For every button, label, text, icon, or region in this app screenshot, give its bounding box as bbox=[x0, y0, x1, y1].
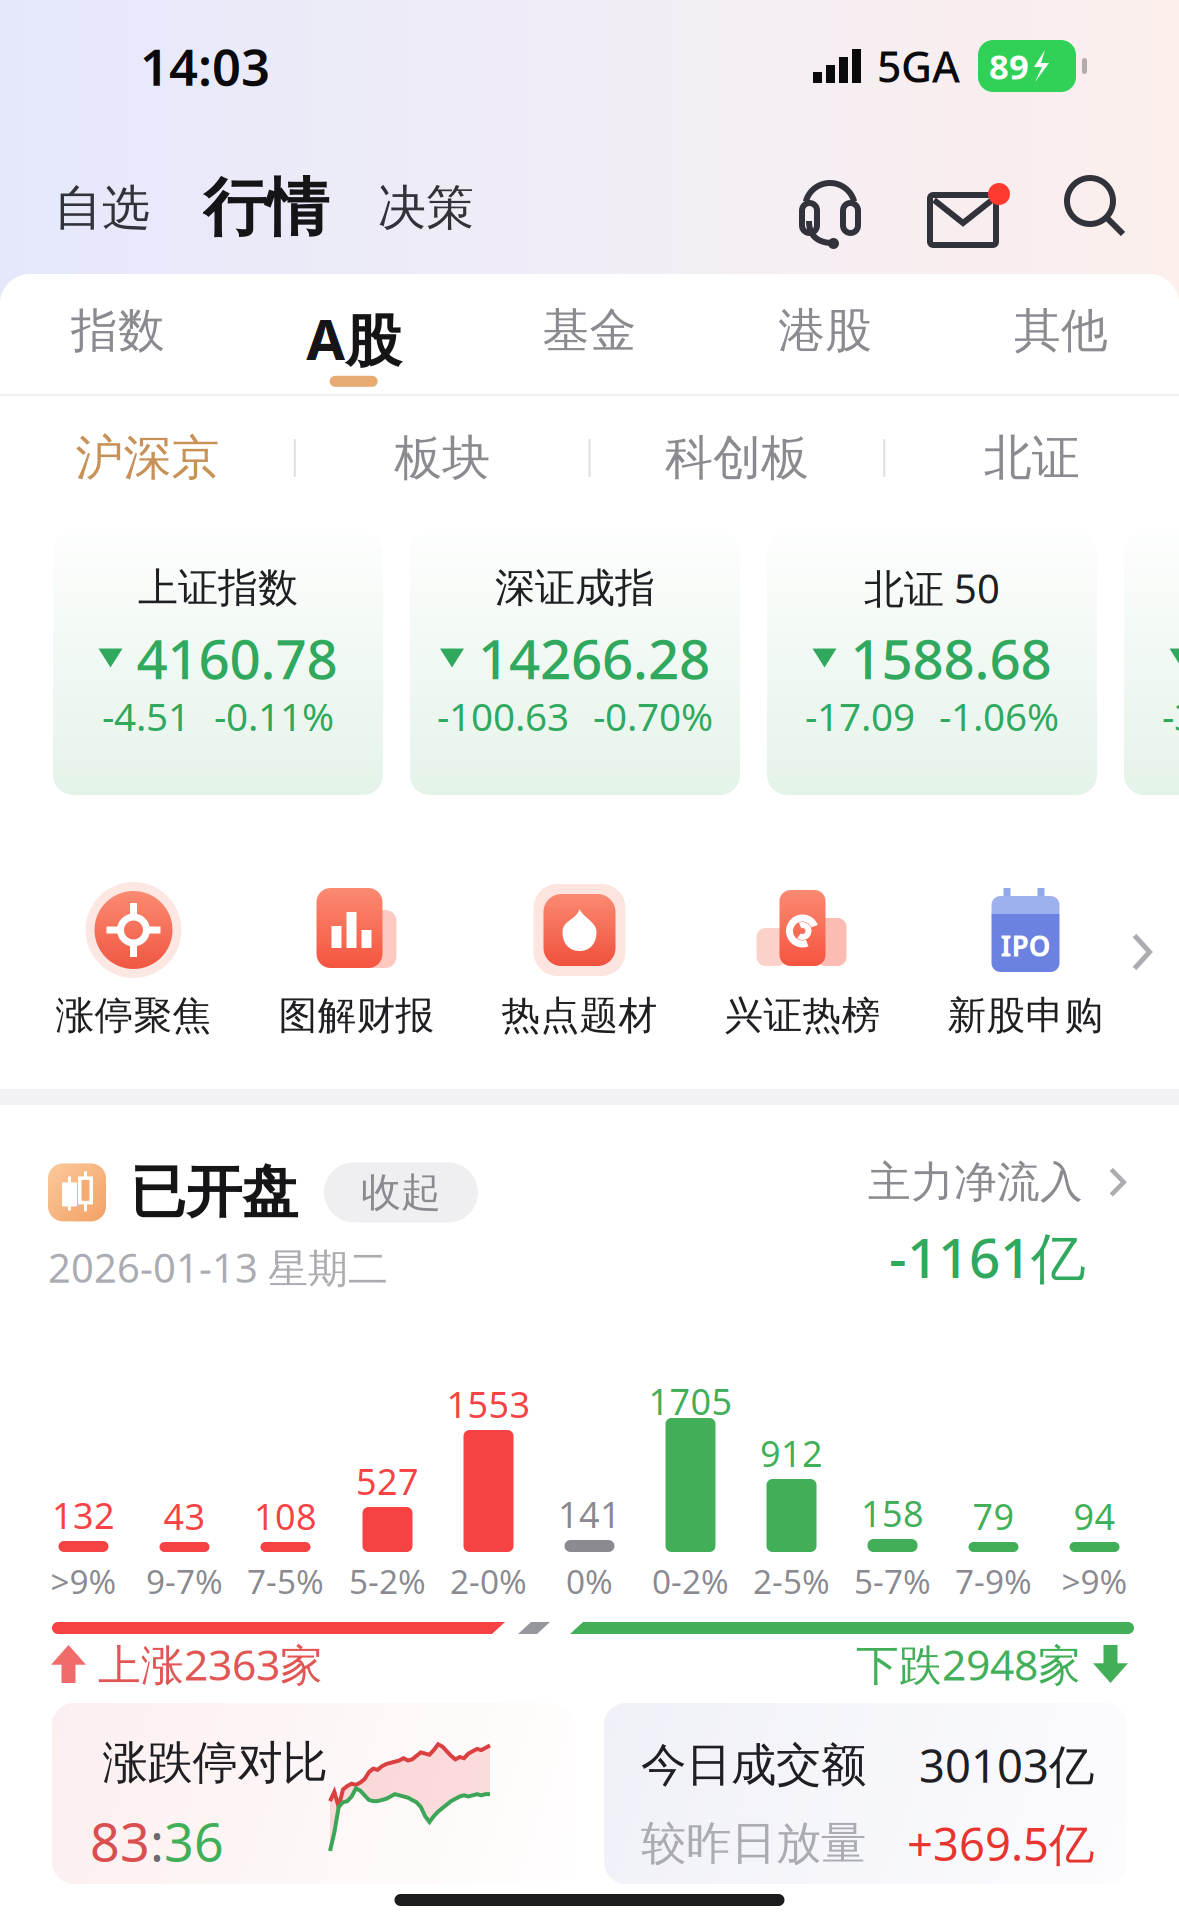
staticText: 热点题材 bbox=[501, 992, 657, 1039]
staticText: 0% bbox=[566, 1559, 613, 1603]
staticText: 已开盘 bbox=[130, 1158, 298, 1227]
staticText: +369.5亿 bbox=[907, 1813, 1094, 1873]
staticText: 94 bbox=[1073, 1492, 1115, 1540]
staticText: 沪深京 bbox=[75, 428, 219, 487]
staticText: -100.63 bbox=[437, 690, 569, 742]
button[interactable]: 北证 50 bbox=[767, 532, 1097, 795]
button[interactable]: Customer service bbox=[801, 172, 859, 244]
staticText: 1705 bbox=[648, 1377, 732, 1425]
staticText: 5GA bbox=[877, 38, 960, 94]
staticText: 指数 bbox=[71, 302, 165, 359]
staticText: 79 bbox=[972, 1492, 1014, 1540]
staticText: 912 bbox=[760, 1429, 823, 1477]
staticText: : bbox=[150, 1807, 164, 1876]
staticText: 527 bbox=[356, 1457, 419, 1505]
button[interactable]: 科创板 bbox=[590, 396, 883, 520]
staticText: 涨停聚焦 bbox=[55, 992, 211, 1039]
button[interactable]: 主力净流入 bbox=[798, 1156, 1138, 1293]
button[interactable]: 今日成交额 bbox=[604, 1703, 1127, 1884]
staticText: 兴证热榜 bbox=[724, 992, 880, 1039]
staticText: 北证 50 bbox=[864, 561, 1000, 614]
button[interactable]: 指数 bbox=[0, 290, 236, 394]
staticText: -0.70% bbox=[593, 690, 713, 742]
staticText: 14:03 bbox=[140, 32, 270, 100]
staticText: 1588.68 bbox=[850, 622, 1051, 694]
staticText: 0-2% bbox=[652, 1559, 729, 1603]
button[interactable]: A股 bbox=[236, 290, 472, 394]
staticText: 36 bbox=[164, 1807, 224, 1876]
staticText: 1553 bbox=[446, 1380, 530, 1428]
staticText: 7-5% bbox=[247, 1559, 324, 1603]
staticText: 108 bbox=[254, 1492, 317, 1540]
staticText: 港股 bbox=[778, 302, 872, 359]
staticText: 14266.28 bbox=[478, 622, 710, 694]
staticText: 上涨2363家 bbox=[98, 1636, 323, 1692]
staticText: 新股申购 bbox=[947, 992, 1103, 1039]
staticText: 较昨日放量 bbox=[641, 1815, 866, 1871]
button[interactable]: 行情 bbox=[196, 158, 336, 258]
staticText: 89 bbox=[989, 43, 1029, 89]
staticText: 基金 bbox=[542, 302, 636, 359]
staticText: 30103亿 bbox=[919, 1735, 1094, 1795]
button[interactable]: 自选 bbox=[52, 158, 152, 258]
button[interactable]: 热点题材 bbox=[468, 870, 691, 1070]
button[interactable]: 创业板指 bbox=[1124, 532, 1179, 795]
button[interactable]: 深证成指 bbox=[410, 532, 740, 795]
staticText: 5-2% bbox=[349, 1559, 426, 1603]
staticText: 涨跌停对比 bbox=[102, 1735, 327, 1791]
staticText: 2-5% bbox=[753, 1559, 830, 1603]
button[interactable]: 涨跌停对比 bbox=[52, 1703, 575, 1884]
staticText: 板块 bbox=[394, 428, 490, 487]
staticText: 132 bbox=[52, 1491, 115, 1539]
button[interactable]: 涨停聚焦 bbox=[22, 870, 245, 1070]
button[interactable]: 板块 bbox=[296, 396, 589, 520]
staticText: >9% bbox=[50, 1559, 116, 1603]
button[interactable]: 上证指数 bbox=[53, 532, 383, 795]
staticText: 5-7% bbox=[854, 1559, 931, 1603]
staticText: 83 bbox=[90, 1807, 150, 1876]
staticText: 2-0% bbox=[450, 1559, 527, 1603]
staticText: >9% bbox=[1061, 1559, 1127, 1603]
staticText: 43 bbox=[163, 1492, 205, 1540]
button[interactable]: IPO bbox=[914, 870, 1137, 1070]
staticText: -1161亿 bbox=[889, 1220, 1086, 1293]
staticText: 今日成交额 bbox=[641, 1737, 866, 1793]
staticText: 4160.78 bbox=[136, 622, 337, 694]
staticText: 决策 bbox=[378, 178, 474, 237]
button[interactable]: Messages bbox=[923, 177, 1003, 239]
staticText: 7-9% bbox=[955, 1559, 1032, 1603]
staticText: 主力净流入 bbox=[868, 1156, 1083, 1208]
staticText: -4.51 bbox=[102, 690, 190, 742]
button[interactable]: 兴证热榜 bbox=[691, 870, 914, 1070]
staticText: 158 bbox=[861, 1489, 924, 1537]
staticText: -0.11% bbox=[214, 690, 334, 742]
staticText: 图解财报 bbox=[278, 992, 434, 1039]
staticText: -17.09 bbox=[805, 690, 915, 742]
button[interactable]: 决策 bbox=[376, 158, 476, 258]
staticText: IPO bbox=[1000, 927, 1050, 964]
button[interactable]: 沪深京 bbox=[1, 396, 294, 520]
staticText: A股 bbox=[306, 301, 401, 376]
button[interactable]: 基金 bbox=[472, 290, 707, 394]
staticText: 141 bbox=[558, 1490, 621, 1538]
staticText: 9-7% bbox=[146, 1559, 223, 1603]
button[interactable]: 北证 bbox=[885, 396, 1178, 520]
button[interactable]: 港股 bbox=[707, 290, 943, 394]
staticText: 科创板 bbox=[665, 428, 809, 487]
staticText: 2026-01-13 星期二 bbox=[48, 1241, 388, 1294]
button[interactable]: 其他 bbox=[943, 290, 1179, 394]
staticText: 其他 bbox=[1014, 302, 1108, 359]
button[interactable]: 图解财报 bbox=[245, 870, 468, 1070]
staticText: -1.06% bbox=[939, 690, 1059, 742]
staticText: 深证成指 bbox=[495, 563, 655, 612]
staticText: -31.07 bbox=[1162, 690, 1179, 742]
staticText: 自选 bbox=[54, 178, 150, 237]
staticText: 行情 bbox=[203, 169, 329, 246]
staticText: 上证指数 bbox=[138, 563, 298, 612]
staticText: 北证 bbox=[984, 428, 1080, 487]
button[interactable]: 收起 bbox=[324, 1162, 478, 1222]
staticText: 收起 bbox=[361, 1168, 441, 1217]
staticText: 下跌2948家 bbox=[856, 1636, 1081, 1692]
button[interactable]: Search bbox=[1067, 178, 1127, 238]
button[interactable]: More bbox=[1112, 922, 1172, 982]
